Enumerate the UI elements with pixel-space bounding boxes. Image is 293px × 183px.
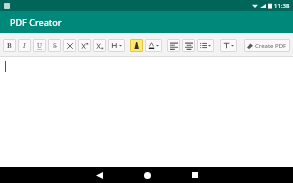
button[interactable]: Italic [18, 39, 31, 52]
button[interactable]: Clear formatting [63, 39, 76, 52]
button[interactable]: Align left [167, 39, 180, 52]
button[interactable]: Font [220, 39, 237, 52]
button[interactable]: Heading [108, 39, 125, 52]
staticText: I [23, 41, 26, 51]
button[interactable]: Superscript [78, 39, 91, 52]
button[interactable]: Home [136, 167, 158, 183]
button[interactable]: Back [88, 167, 110, 183]
button[interactable]: Recents [184, 167, 206, 183]
button[interactable]: Highlight color [130, 39, 143, 52]
staticText: PDF Creator [10, 16, 62, 28]
button[interactable]: Bold [3, 39, 16, 52]
button[interactable]: Subscript [93, 39, 106, 52]
staticText: S [53, 41, 57, 51]
staticText: Create PDF [255, 42, 287, 50]
button[interactable]: Underline [33, 39, 46, 52]
staticText: U [37, 41, 43, 51]
button[interactable]: Align center [182, 39, 195, 52]
button[interactable]: Text color [145, 39, 162, 52]
button[interactable]: Create PDF [244, 39, 290, 52]
staticText: 11:38 [274, 2, 290, 10]
staticText: B [7, 41, 12, 51]
button[interactable]: List [197, 39, 214, 52]
button[interactable]: Strikethrough [48, 39, 61, 52]
